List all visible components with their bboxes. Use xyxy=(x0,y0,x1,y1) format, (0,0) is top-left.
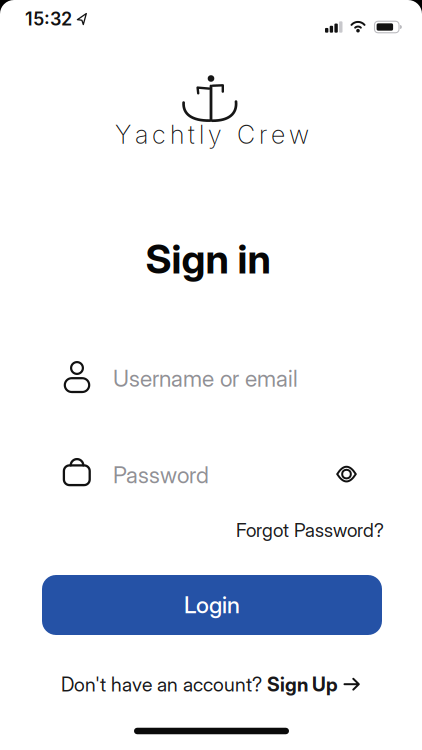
staticText: C xyxy=(237,119,255,150)
staticText: Sign in xyxy=(145,235,270,283)
staticText: h xyxy=(170,119,184,150)
staticText: a xyxy=(135,119,148,150)
staticText: l xyxy=(199,119,204,150)
staticText: y xyxy=(208,119,222,150)
staticText xyxy=(226,119,233,150)
staticText: r xyxy=(259,119,267,150)
button[interactable]: Password xyxy=(56,449,330,495)
staticText: Y xyxy=(115,119,131,150)
staticText: Forgot Password? xyxy=(236,518,384,541)
staticText: w xyxy=(289,119,309,150)
button[interactable]: Show password xyxy=(328,456,364,492)
staticText: Password xyxy=(113,461,209,489)
staticText: c xyxy=(152,119,166,150)
button[interactable]: Username or email xyxy=(56,354,382,400)
staticText: Sign Up xyxy=(267,673,338,696)
staticText: t xyxy=(188,119,195,150)
button[interactable]: Don't have an account? xyxy=(61,666,360,702)
staticText: 15:32 xyxy=(25,8,72,30)
staticText: e xyxy=(271,119,285,150)
staticText: Username or email xyxy=(113,365,298,392)
button[interactable]: Forgot Password? xyxy=(236,512,384,547)
staticText: Don't have an account? xyxy=(61,673,267,696)
staticText: Login xyxy=(184,591,240,619)
button[interactable]: Login xyxy=(42,575,382,635)
